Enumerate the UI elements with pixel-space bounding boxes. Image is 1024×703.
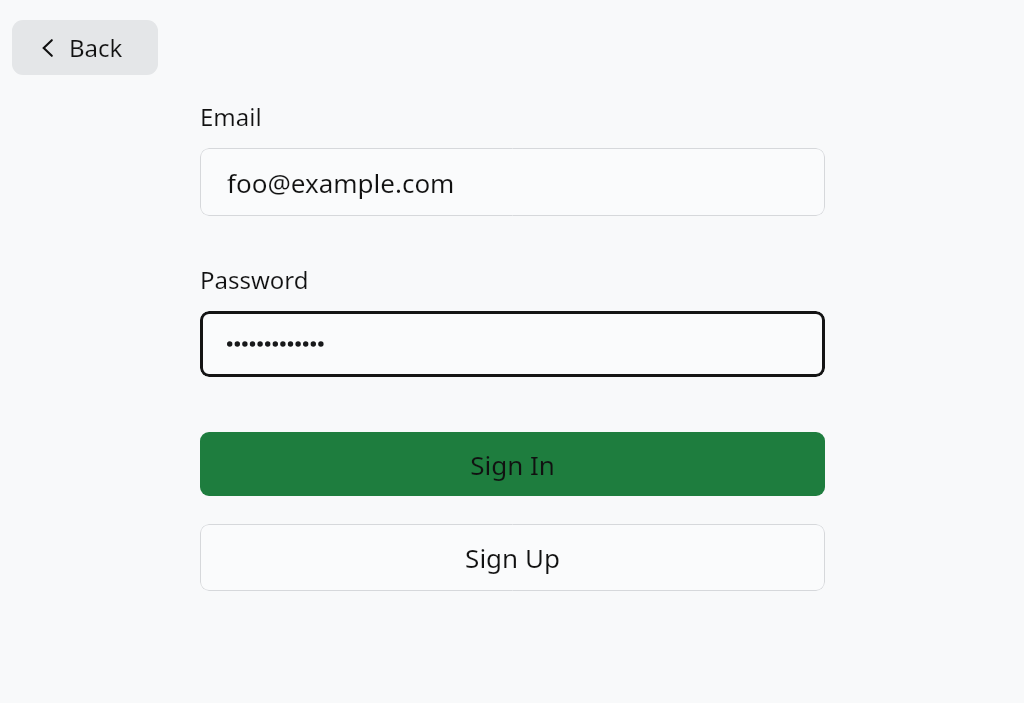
button[interactable]: Back [12,20,158,75]
button[interactable] [200,311,825,377]
staticText: Password [200,263,309,296]
staticText: Sign In [470,447,555,482]
staticText: Email [200,100,262,133]
button[interactable]: Sign Up [200,524,825,591]
staticText: foo@example.com [227,165,455,200]
button[interactable]: Sign In [200,432,825,496]
button[interactable]: foo@example.com [200,148,825,216]
other: Back [42,39,53,57]
staticText: Back [69,31,123,64]
staticText: Sign Up [465,540,560,575]
